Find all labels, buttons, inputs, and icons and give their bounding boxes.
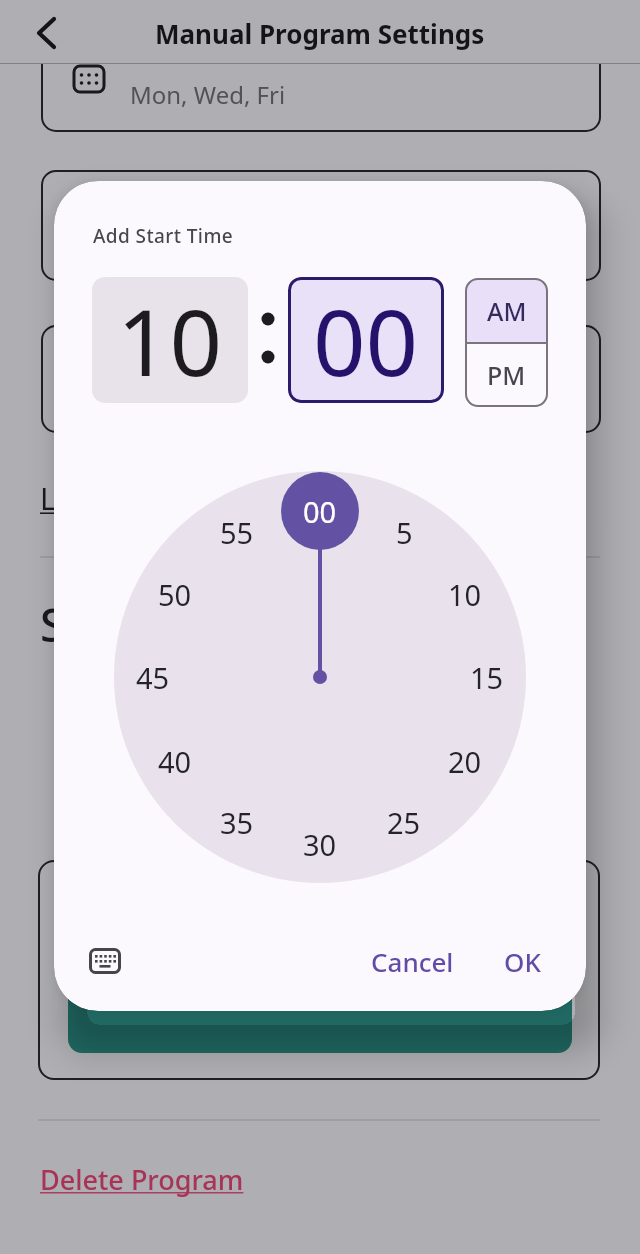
staticText: 55 — [220, 513, 254, 552]
staticText: Delete Program — [40, 1161, 244, 1198]
staticText: 5 — [396, 513, 413, 552]
button[interactable]: 10 — [92, 277, 248, 403]
staticText: 10 — [117, 278, 223, 403]
staticText: 50 — [158, 575, 192, 614]
button[interactable] — [89, 948, 121, 974]
button[interactable]: 15 — [457, 647, 517, 707]
staticText: 30 — [303, 825, 337, 864]
staticText: Start Times — [40, 594, 284, 655]
staticText: Add Start Time — [93, 223, 234, 249]
button[interactable] — [37, 17, 57, 49]
button[interactable]: 50 — [145, 564, 205, 624]
button[interactable]: 5 — [374, 502, 434, 562]
staticText: OK — [504, 944, 541, 979]
button[interactable]: 10 — [435, 564, 495, 624]
staticText: PM — [487, 358, 526, 392]
button[interactable]: OK — [482, 937, 562, 985]
button[interactable]: 20 — [435, 731, 495, 791]
staticText: 00 — [303, 492, 337, 531]
staticText: 40 — [158, 742, 192, 781]
button[interactable]: 40 — [145, 731, 205, 791]
staticText: 25 — [387, 803, 421, 842]
staticText: 00 — [313, 278, 419, 403]
button[interactable]: Cancel — [342, 937, 482, 985]
staticText: 15 — [470, 658, 504, 697]
staticText: Mon, Wed, Fri — [130, 78, 286, 111]
staticText: 20 — [448, 742, 482, 781]
button[interactable]: 30 — [290, 814, 350, 874]
button[interactable]: 00 — [288, 277, 444, 403]
button[interactable]: AM — [465, 278, 548, 343]
button[interactable]: PM — [465, 343, 548, 407]
staticText: Light Schedule — [40, 478, 248, 519]
staticText: AM — [487, 294, 527, 328]
staticText: 10 — [448, 575, 482, 614]
button[interactable]: 25 — [374, 792, 434, 852]
staticText: 35 — [220, 803, 254, 842]
button[interactable] — [68, 940, 572, 1053]
button[interactable]: Delete Program — [40, 1161, 244, 1198]
button[interactable]: 35 — [207, 792, 267, 852]
staticText: 45 — [136, 658, 170, 697]
button[interactable]: 45 — [123, 647, 183, 707]
button[interactable]: 55 — [207, 502, 267, 562]
button[interactable]: 00 — [281, 472, 359, 550]
staticText: Cancel — [371, 944, 454, 979]
staticText: Manual Program Settings — [155, 16, 485, 51]
